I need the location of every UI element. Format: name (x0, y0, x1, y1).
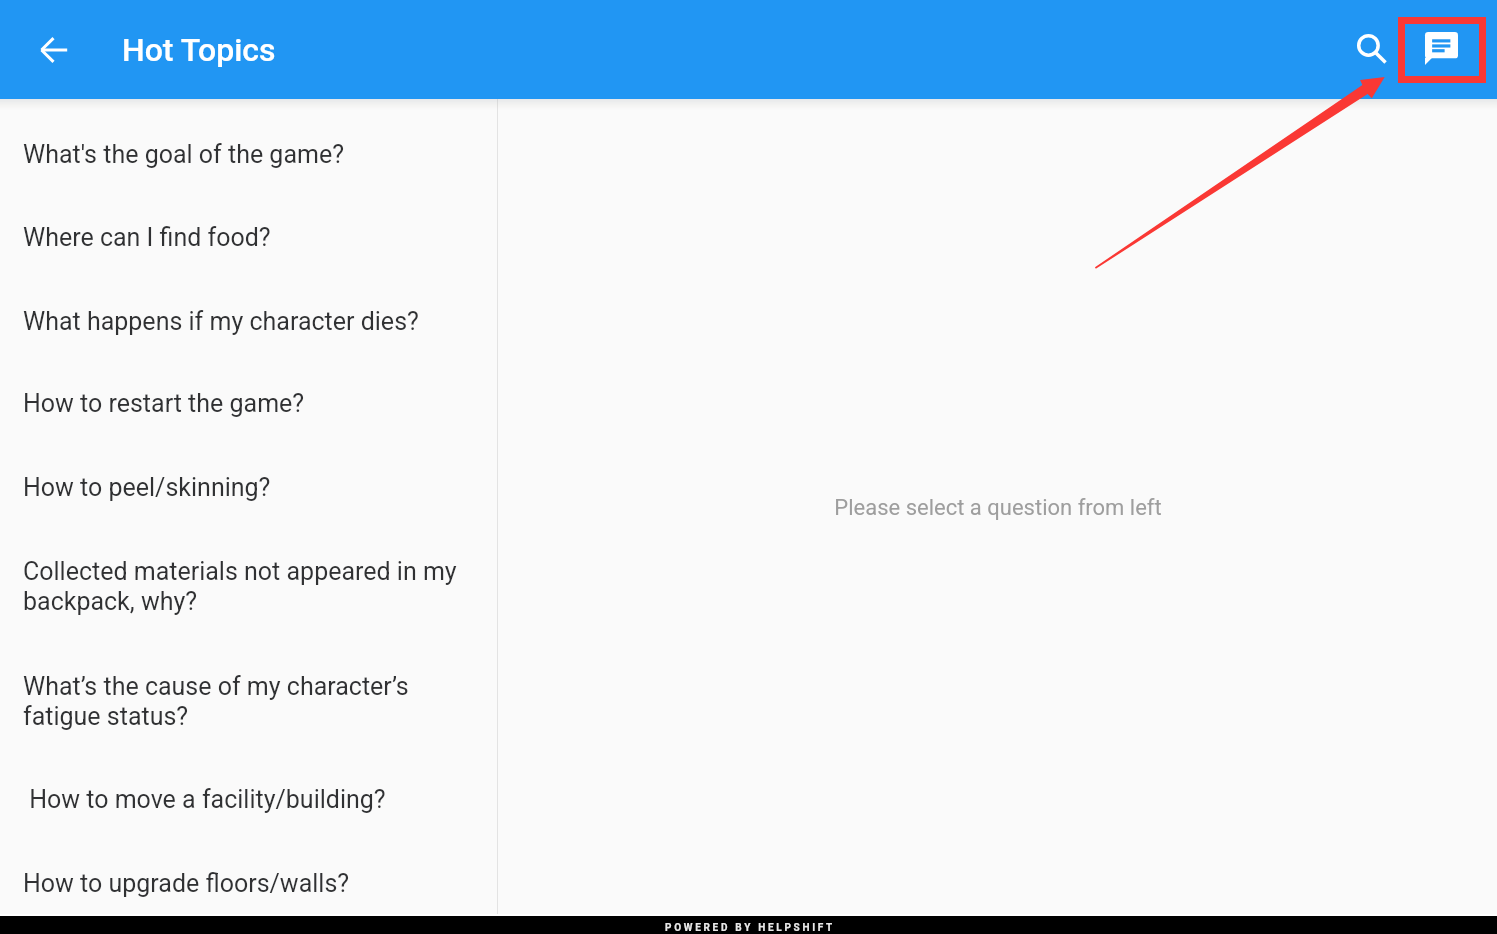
button[interactable]: What happens if my character dies? (0, 280, 497, 363)
button[interactable]: Back (28, 25, 77, 74)
staticText: Collected materials not appeared in my b… (23, 557, 459, 616)
button[interactable]: How to upgrade floors/walls? (0, 841, 497, 925)
button[interactable]: What’s the cause of my character’s fatig… (0, 645, 497, 758)
staticText: How to upgrade floors/walls? (23, 869, 350, 898)
staticText: What's the goal of the game? (23, 140, 344, 169)
staticText: POWERED BY HELPSHIFT (665, 922, 835, 934)
button[interactable]: What's the goal of the game? (0, 112, 497, 196)
button[interactable]: Where can I find food? (0, 195, 497, 279)
staticText: How to move a facility/building? (23, 785, 386, 814)
staticText: Where can I find food? (23, 223, 271, 252)
staticText: What’s the cause of my character’s fatig… (23, 672, 459, 731)
button[interactable]: Search (1348, 25, 1397, 74)
button[interactable]: How to peel/skinning? (0, 445, 497, 530)
button[interactable]: Collected materials not appeared in my b… (0, 530, 497, 643)
staticText: How to peel/skinning? (23, 473, 271, 502)
button[interactable]: How to restart the game? (0, 361, 497, 445)
staticText: How to restart the game? (23, 389, 305, 418)
staticText: Please select a question from left (834, 495, 1162, 521)
staticText: What happens if my character dies? (23, 307, 419, 336)
button[interactable]: How to move a facility/building? (0, 757, 497, 841)
button[interactable]: Contact us (1416, 25, 1465, 74)
staticText: Hot Topics (122, 31, 276, 69)
